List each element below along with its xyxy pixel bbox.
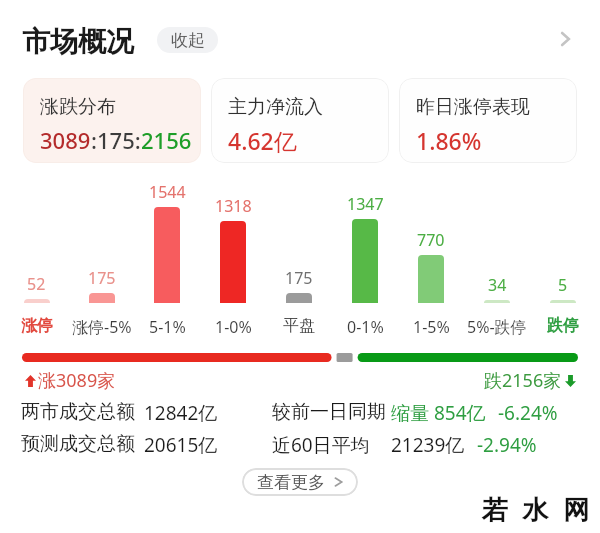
button[interactable]: 主力净流入 bbox=[211, 78, 389, 163]
staticText: 收起 bbox=[171, 30, 205, 51]
staticText: 5 bbox=[558, 274, 568, 296]
staticText: :175: bbox=[91, 125, 141, 155]
staticText: 近60日平均 bbox=[272, 432, 370, 454]
staticText: 涨3089家 bbox=[38, 368, 116, 393]
button[interactable]: 昨日涨停表现 bbox=[399, 78, 577, 163]
staticText: 175 bbox=[285, 267, 313, 289]
staticText: 1.86% bbox=[416, 125, 482, 156]
button[interactable]: 涨跌分布 bbox=[23, 78, 201, 163]
staticText: 1347 bbox=[347, 193, 384, 215]
staticText: 涨跌分布 bbox=[40, 95, 116, 119]
staticText: 2156 bbox=[141, 125, 192, 155]
staticText: 查看更多 bbox=[257, 472, 325, 493]
staticText: -2.94% bbox=[477, 432, 537, 454]
staticText: 缩量 854亿 bbox=[391, 400, 486, 422]
staticText: 若水网 bbox=[474, 494, 597, 527]
button[interactable]: 展开更多 bbox=[542, 16, 588, 62]
staticText: 涨停-5% bbox=[72, 316, 132, 336]
staticText: 21239亿 bbox=[391, 432, 465, 454]
staticText: 5-1% bbox=[149, 316, 186, 336]
staticText: 4.62亿 bbox=[228, 125, 297, 156]
staticText: 1318 bbox=[215, 195, 252, 217]
button[interactable]: 查看更多 bbox=[242, 468, 358, 496]
staticText: 1-5% bbox=[413, 316, 450, 336]
staticText: 20615亿 bbox=[144, 432, 218, 454]
staticText: 5%-跌停 bbox=[467, 316, 527, 336]
staticText: 平盘 bbox=[283, 316, 315, 336]
staticText: 主力净流入 bbox=[228, 95, 323, 119]
staticText: 预测成交总额 bbox=[21, 432, 135, 454]
button[interactable]: 收起 bbox=[157, 27, 218, 53]
staticText: 跌2156家 bbox=[484, 368, 562, 393]
staticText: 跌停 bbox=[547, 316, 579, 336]
staticText: -6.24% bbox=[498, 400, 558, 422]
staticText: 52 bbox=[27, 273, 46, 295]
staticText: 1544 bbox=[149, 181, 186, 203]
staticText: 770 bbox=[417, 229, 445, 251]
staticText: 0-1% bbox=[347, 316, 384, 336]
staticText: 175 bbox=[88, 267, 116, 289]
staticText: 涨停 bbox=[21, 316, 53, 336]
staticText: 两市成交总额 bbox=[21, 400, 135, 422]
staticText: 较前一日同期 bbox=[272, 400, 386, 422]
staticText: 昨日涨停表现 bbox=[416, 95, 530, 119]
staticText: 市场概况 bbox=[22, 24, 134, 59]
staticText: 34 bbox=[488, 274, 507, 296]
staticText: 3089 bbox=[40, 125, 91, 155]
staticText: 1-0% bbox=[215, 316, 252, 336]
staticText: 12842亿 bbox=[144, 400, 218, 422]
